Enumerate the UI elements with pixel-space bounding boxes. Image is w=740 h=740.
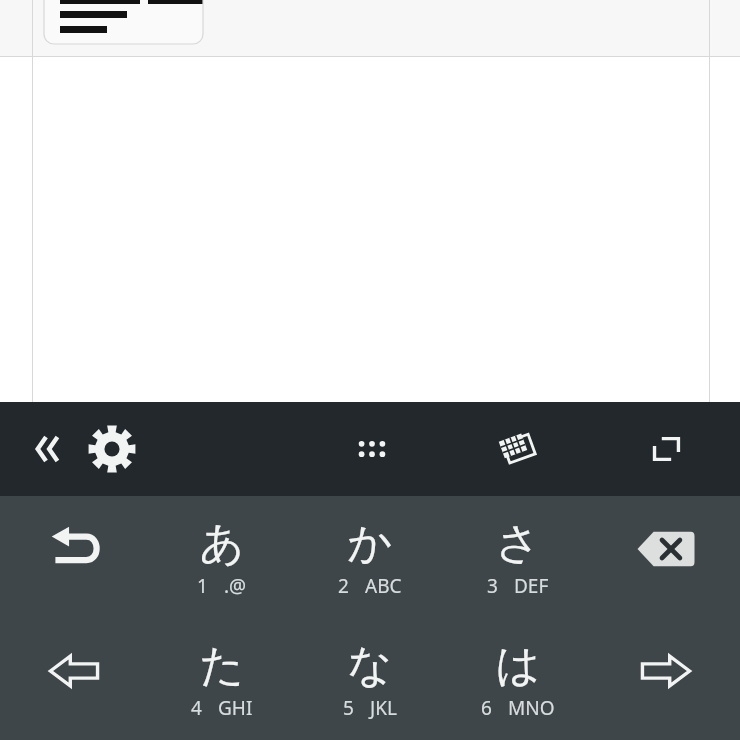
button[interactable]: Keyboard settings [76, 402, 148, 496]
staticText: 3 [487, 573, 498, 599]
staticText: あ [199, 516, 245, 571]
button[interactable]: Delete [592, 496, 740, 618]
button[interactable]: あ [148, 496, 296, 618]
button[interactable]: Collapse keyboard [10, 402, 82, 496]
staticText: さ [495, 516, 541, 571]
button[interactable] [44, 0, 203, 44]
button[interactable]: Undo [0, 496, 148, 618]
staticText: た [199, 638, 245, 693]
staticText: な [347, 638, 393, 693]
staticText: GHI [218, 695, 253, 721]
staticText: か [347, 516, 393, 571]
button[interactable]: た [148, 618, 296, 740]
button[interactable]: は [444, 618, 592, 740]
button[interactable]: か [296, 496, 444, 618]
staticText: JKL [370, 695, 397, 721]
button[interactable]: Resize keyboard [631, 402, 703, 496]
staticText: は [495, 638, 541, 693]
staticText: ABC [365, 573, 402, 599]
staticText: 5 [343, 695, 354, 721]
staticText: 6 [481, 695, 492, 721]
staticText: 1 [197, 573, 208, 599]
staticText: 4 [191, 695, 202, 721]
button[interactable]: Move cursor left [0, 618, 148, 740]
staticText: .@ [224, 573, 247, 599]
staticText: 2 [338, 573, 349, 599]
button[interactable]: More options [336, 402, 408, 496]
button[interactable]: さ [444, 496, 592, 618]
staticText: MNO [508, 695, 555, 721]
staticText: DEF [514, 573, 549, 599]
button[interactable]: Move cursor right [592, 618, 740, 740]
button[interactable]: Switch keyboard layout [482, 402, 554, 496]
button[interactable]: な [296, 618, 444, 740]
